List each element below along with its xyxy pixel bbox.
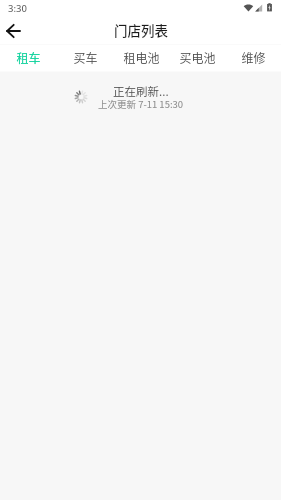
- button[interactable]: 租车: [0, 45, 57, 71]
- staticText: 买电池: [179, 49, 216, 66]
- staticText: 买车: [73, 49, 98, 66]
- button[interactable]: 买电池: [169, 45, 225, 71]
- staticText: 租车: [16, 49, 41, 66]
- button[interactable]: 租电池: [113, 45, 169, 71]
- staticText: 正在刷新...: [113, 83, 169, 100]
- button[interactable]: 买车: [57, 45, 113, 71]
- button[interactable]: Back: [1, 18, 27, 44]
- staticText: 门店列表: [114, 20, 168, 40]
- staticText: 维修: [241, 49, 266, 66]
- staticText: 上次更新 7-11 15:30: [98, 97, 184, 111]
- staticText: 租电池: [123, 49, 160, 66]
- button[interactable]: 维修: [225, 45, 281, 71]
- staticText: 3:30: [8, 2, 27, 15]
